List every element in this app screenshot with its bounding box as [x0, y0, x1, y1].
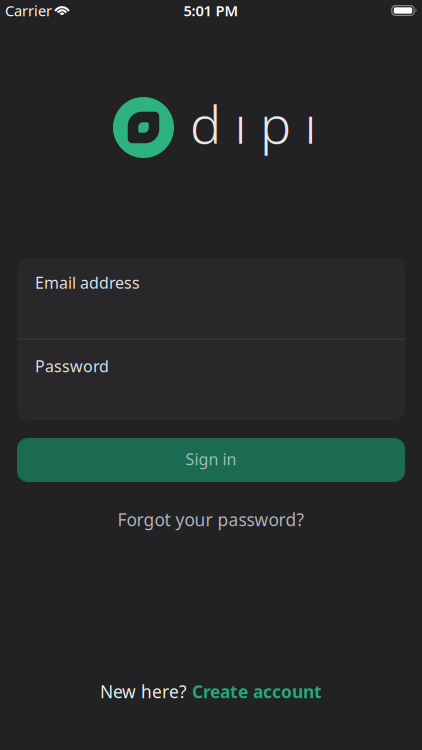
staticText: Password [35, 355, 109, 377]
button[interactable]: Sign in [17, 438, 405, 482]
staticText: 5:01 PM [183, 1, 238, 20]
button[interactable]: Create account [192, 680, 322, 703]
staticText: Email address [35, 272, 140, 293]
staticText: Forgot your password? [117, 508, 304, 531]
button[interactable]: Email address [17, 258, 405, 338]
staticText: Create account [192, 680, 322, 703]
staticText: dıpı [190, 89, 316, 158]
staticText: Carrier [5, 1, 52, 20]
staticText: New here? [100, 680, 187, 703]
staticText: Sign in [185, 448, 236, 470]
button[interactable]: Forgot your password? [107, 502, 314, 537]
button[interactable]: Password [17, 339, 405, 420]
